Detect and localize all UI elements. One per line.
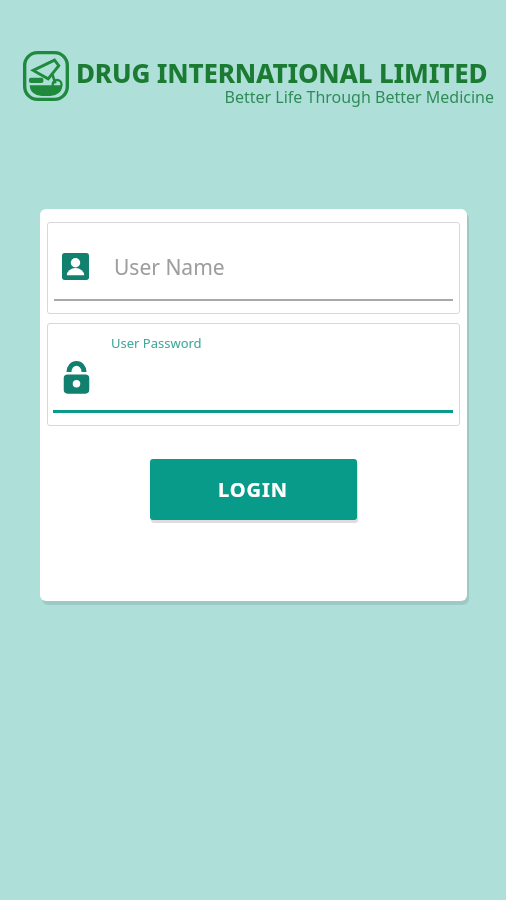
staticText: LOGIN xyxy=(218,476,289,503)
button[interactable]: User Name xyxy=(47,222,460,314)
staticText: User Password xyxy=(111,334,202,352)
button[interactable]: User Password xyxy=(47,323,460,426)
staticText: DRUG INTERNATIONAL LIMITED xyxy=(76,55,496,90)
staticText: Better Life Through Better Medicine xyxy=(152,86,494,108)
button[interactable]: LOGIN xyxy=(150,459,357,520)
staticText: User Name xyxy=(114,253,225,282)
